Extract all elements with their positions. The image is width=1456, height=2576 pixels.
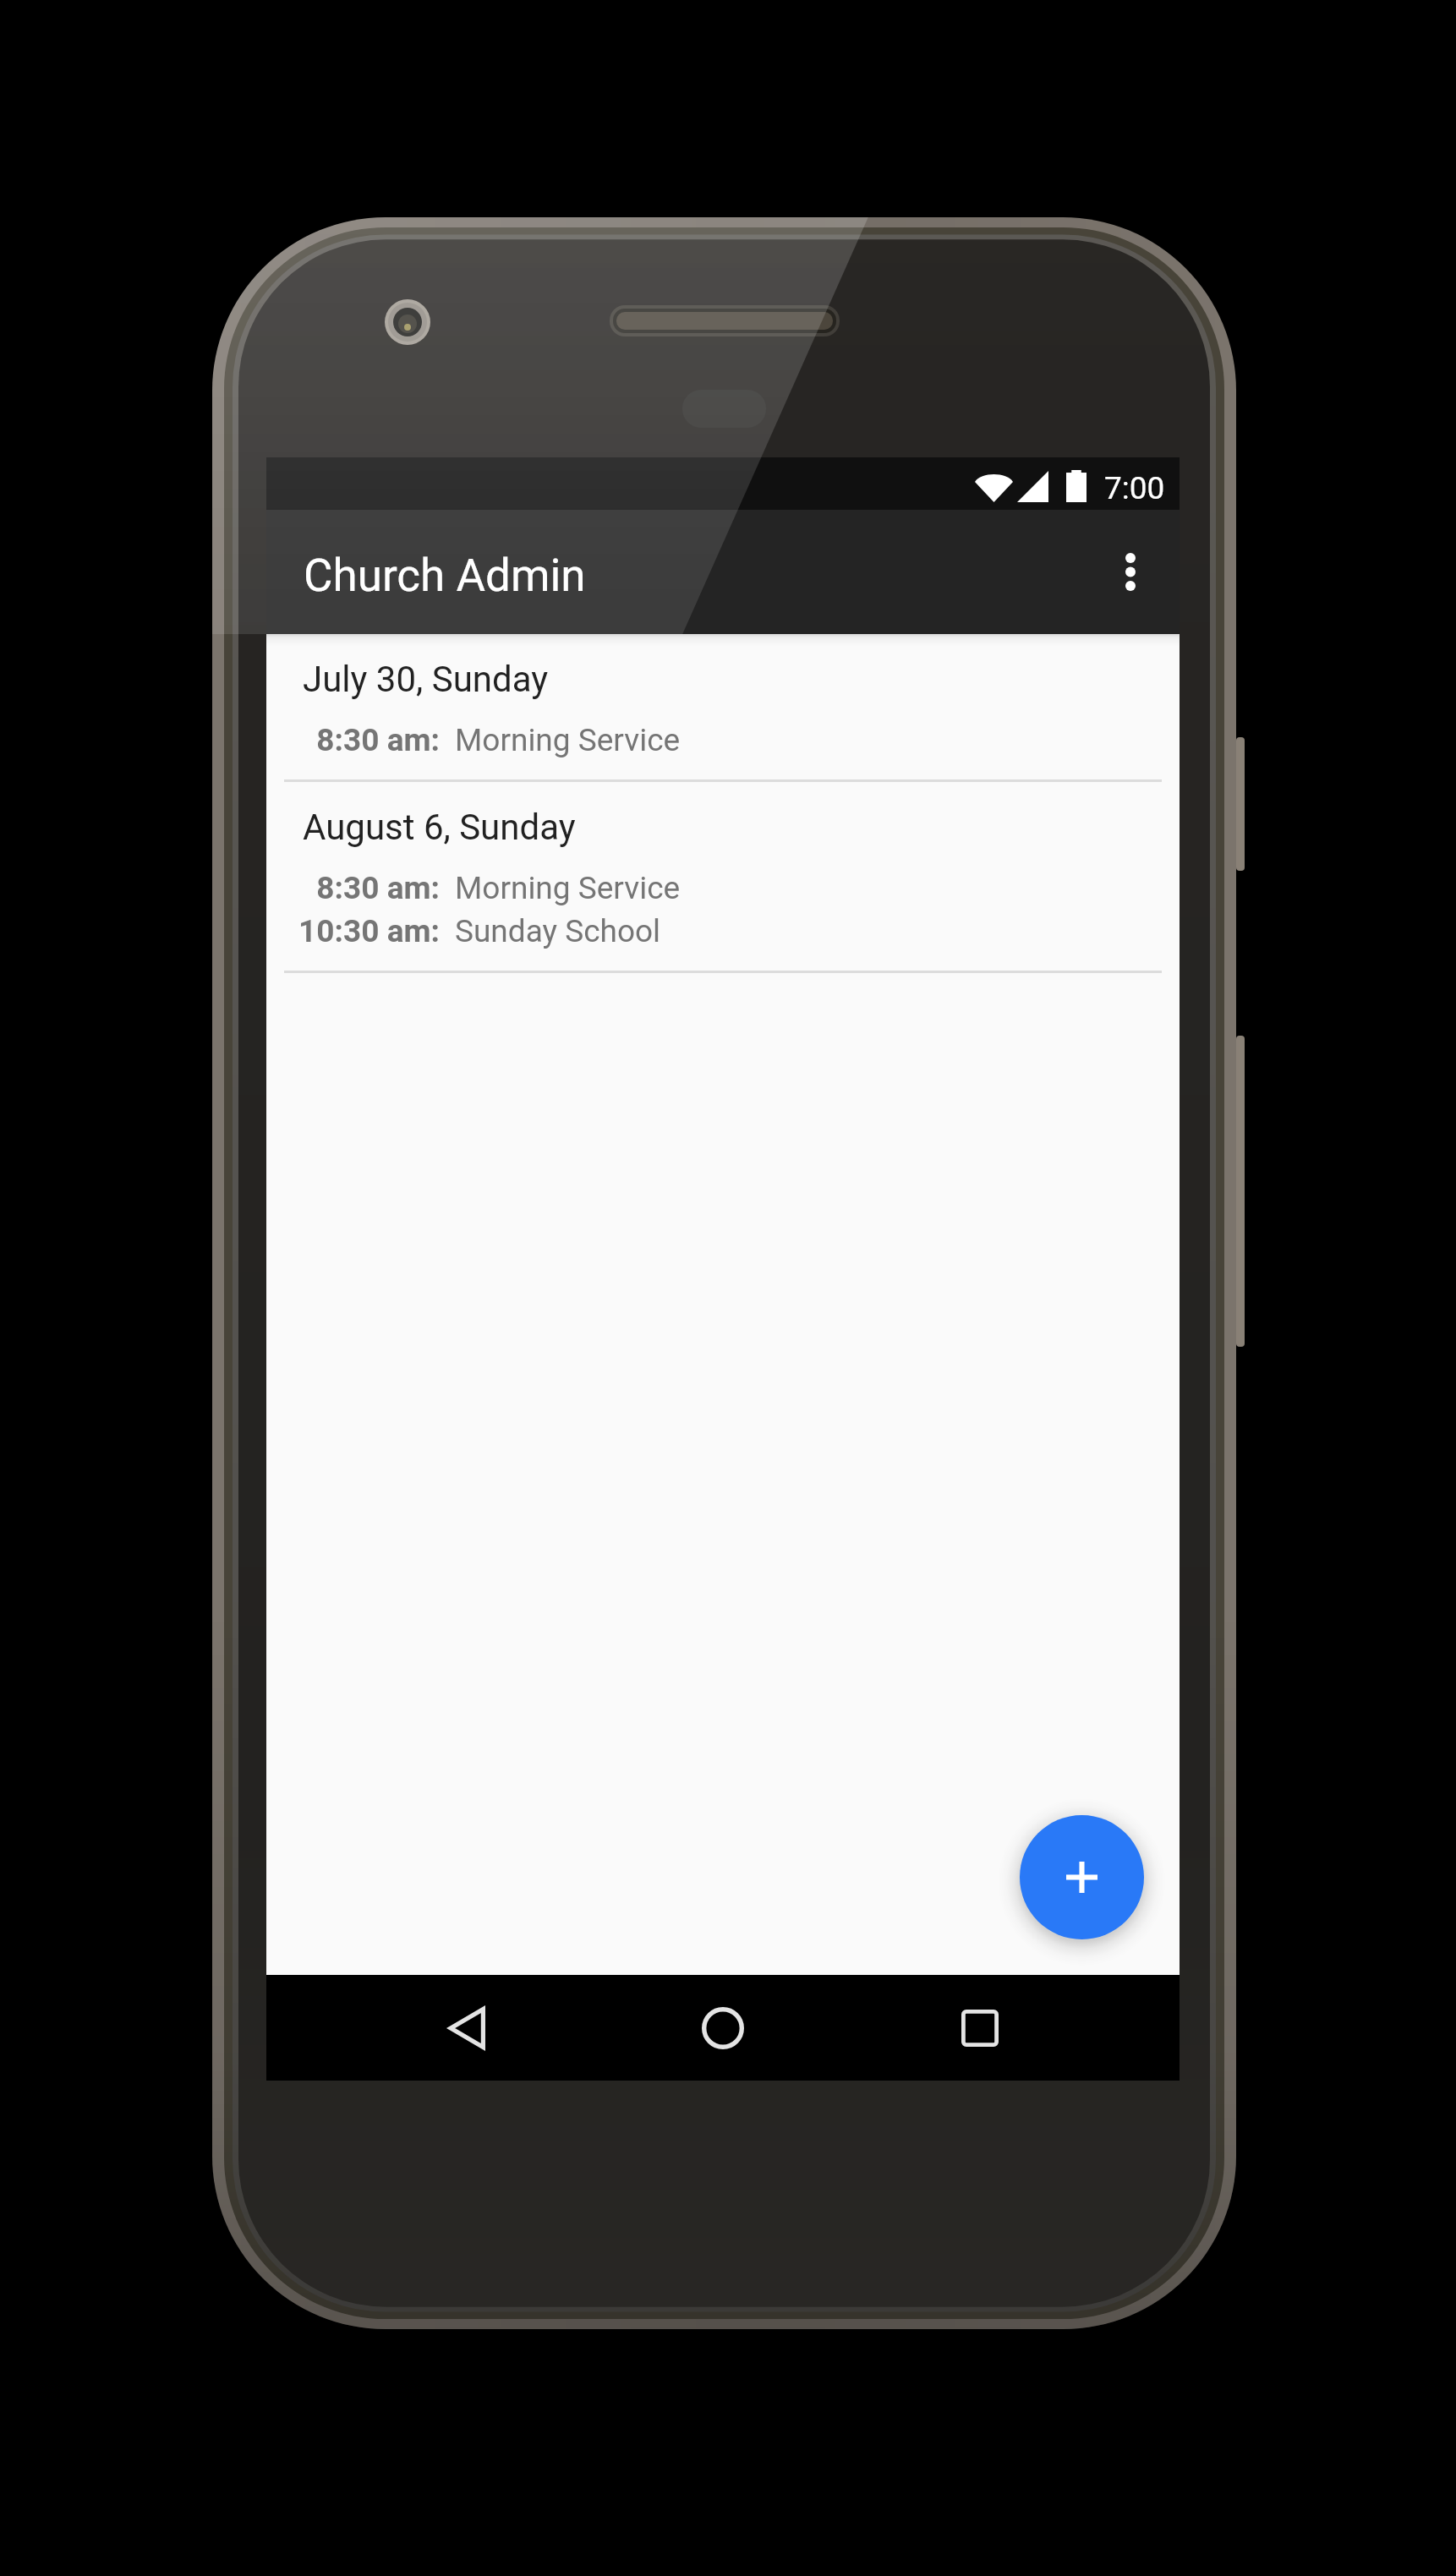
button[interactable]: Back bbox=[414, 1975, 519, 2081]
staticText: Morning Service bbox=[455, 870, 681, 906]
button[interactable]: Church Admin bbox=[266, 510, 1180, 634]
staticText: 10:30 am: bbox=[266, 913, 440, 949]
button[interactable]: Recent apps bbox=[928, 1975, 1032, 2081]
staticText: Morning Service bbox=[455, 722, 681, 758]
staticText: Sunday School bbox=[455, 913, 661, 949]
staticText: Church Admin bbox=[304, 550, 586, 602]
staticText: 8:30 am: bbox=[266, 722, 440, 758]
button[interactable]: August 6, Sunday bbox=[266, 782, 1180, 973]
staticText: July 30, Sunday bbox=[303, 659, 549, 700]
button[interactable]: July 30, Sunday bbox=[266, 634, 1180, 782]
staticText: 8:30 am: bbox=[266, 870, 440, 906]
staticText: August 6, Sunday bbox=[303, 807, 576, 848]
button[interactable]: Add event bbox=[1020, 1815, 1144, 1939]
staticText: 7:00 bbox=[1104, 470, 1165, 506]
button[interactable]: More options bbox=[1081, 510, 1180, 634]
button[interactable]: Home bbox=[671, 1975, 775, 2081]
